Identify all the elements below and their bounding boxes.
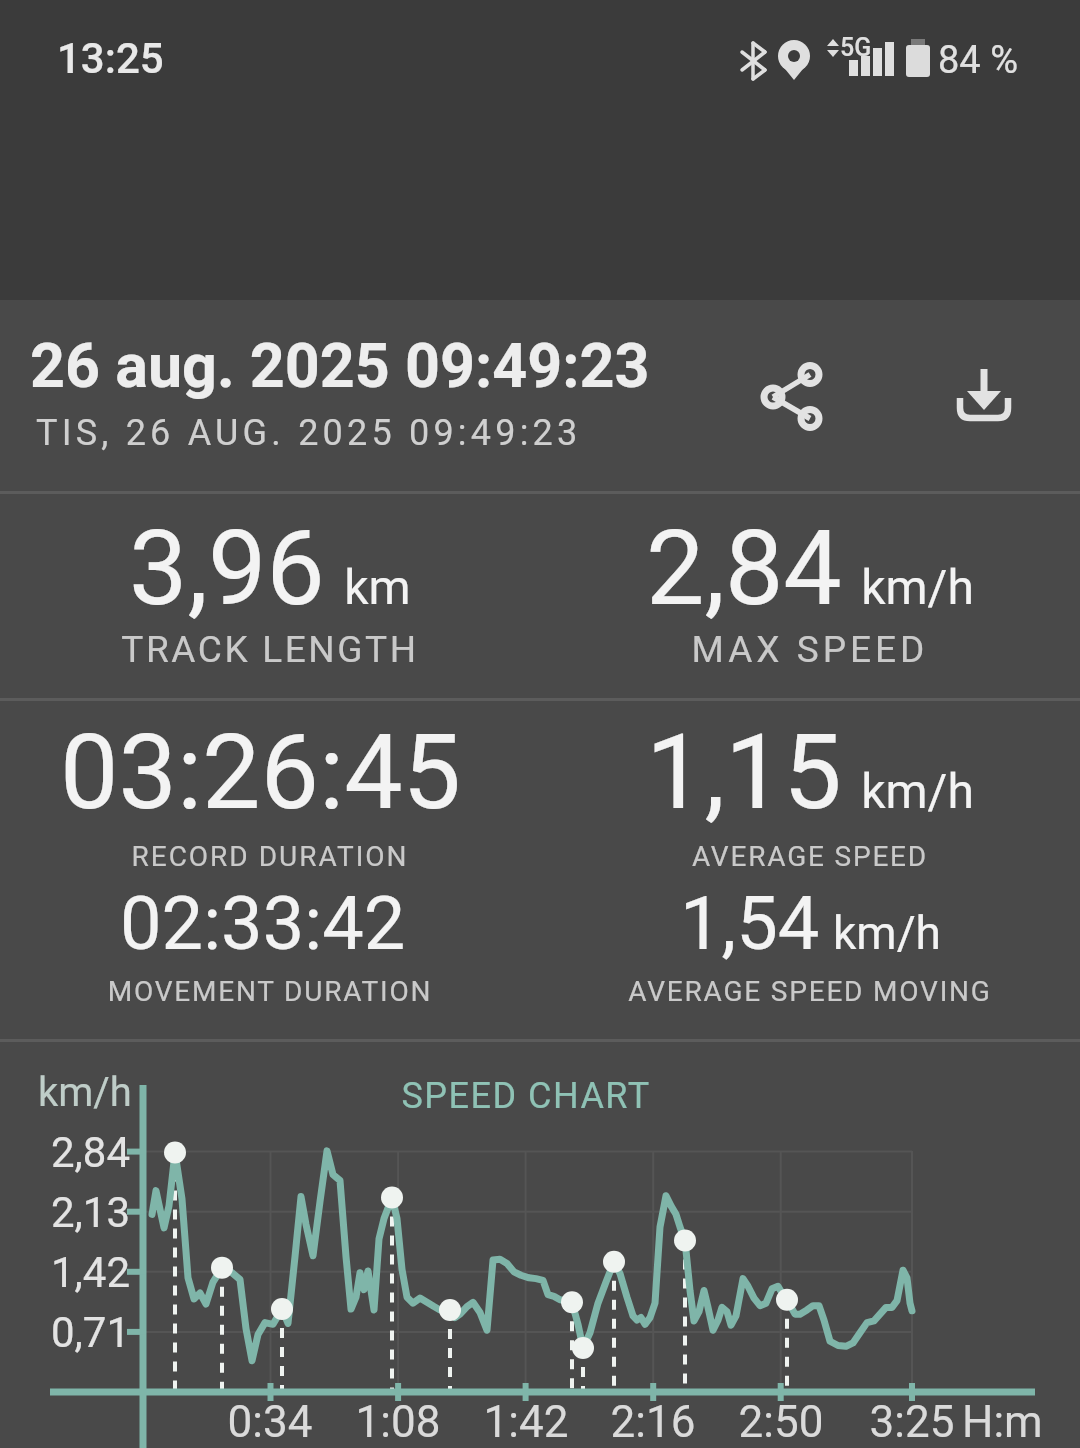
staticText: 13:25 (57, 34, 164, 83)
staticText: 2:16 (573, 1396, 733, 1448)
staticText: 2:50 (701, 1396, 861, 1448)
staticText: SPEED CHART (256, 1075, 796, 1117)
staticText: 2,13 (0, 1188, 130, 1237)
staticText: 1,42 (0, 1248, 130, 1297)
staticText: 0:34 (190, 1396, 350, 1448)
staticText: H:m (962, 1396, 1043, 1448)
staticText: km/h (38, 1069, 132, 1116)
staticText: 1,54 km/h (680, 880, 941, 967)
staticText: 2,84 (0, 1128, 130, 1177)
staticText: 3,96 km (129, 508, 411, 630)
button[interactable] (745, 350, 845, 445)
staticText: 1:08 (318, 1396, 478, 1448)
staticText: 0,71 (0, 1308, 130, 1357)
staticText: RECORD DURATION (0, 840, 540, 873)
button[interactable] (945, 355, 1025, 435)
staticText: MOVEMENT DURATION (0, 975, 540, 1008)
staticText: 2,84 km/h (646, 508, 974, 630)
staticText: 3:25 (832, 1396, 992, 1448)
staticText: MAX SPEED (540, 628, 1080, 671)
staticText: AVERAGE SPEED (540, 840, 1080, 873)
staticText: 26 aug. 2025 09:49:23 (30, 330, 650, 401)
staticText: 1,15 km/h (646, 712, 974, 834)
staticText: 1:42 (446, 1396, 606, 1448)
staticText: 03:26:45 (60, 712, 481, 834)
staticText: TIS, 26 AUG. 2025 09:49:23 (36, 412, 582, 454)
staticText: TRACK LENGTH (0, 628, 540, 671)
staticText: 02:33:42 (120, 880, 420, 967)
staticText: 5G (840, 33, 872, 62)
staticText: 84 % (938, 38, 1018, 83)
staticText: AVERAGE SPEED MOVING (540, 975, 1080, 1008)
